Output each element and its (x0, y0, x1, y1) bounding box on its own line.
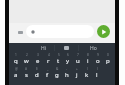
staticText: 3 (37, 53, 39, 57)
button[interactable]: Send (97, 25, 110, 38)
staticText: o (96, 57, 100, 65)
button[interactable]: 7 (73, 53, 83, 67)
staticText: j (76, 71, 78, 79)
button[interactable]: Voice typing (56, 43, 77, 53)
button[interactable]: ) (92, 67, 102, 81)
button[interactable]: 8 (83, 53, 93, 67)
staticText: y (66, 57, 70, 65)
button[interactable]: + (72, 67, 82, 81)
staticText: r (47, 57, 50, 65)
staticText: - (66, 67, 68, 71)
button[interactable] (26, 25, 94, 38)
button[interactable]: 1 (10, 53, 21, 67)
staticText: 6 (67, 53, 69, 57)
staticText: 7 (77, 53, 79, 57)
button[interactable]: ( (82, 67, 92, 81)
button[interactable]: 2 (21, 53, 32, 67)
staticText: q (14, 57, 18, 65)
button[interactable]: Attach media (14, 26, 27, 39)
staticText: s (25, 71, 28, 79)
staticText: f (46, 71, 49, 79)
staticText: _ (47, 67, 49, 71)
staticText: k (85, 71, 89, 79)
staticText: u (76, 57, 80, 65)
button[interactable]: Ho (81, 43, 105, 53)
button[interactable]: # (21, 67, 32, 81)
staticText: $ (36, 67, 38, 71)
button[interactable]: Hi (31, 43, 55, 53)
staticText: Ho (90, 45, 97, 52)
staticText: g (55, 71, 59, 79)
button[interactable]: - (62, 67, 72, 81)
staticText: @ (15, 67, 18, 71)
staticText: # (25, 67, 28, 71)
staticText: & (56, 67, 59, 71)
staticText: 9 (97, 53, 99, 57)
button[interactable]: _ (42, 67, 52, 81)
staticText: 5 (58, 53, 60, 57)
button[interactable]: 6 (63, 53, 73, 67)
staticText: w (24, 57, 29, 65)
staticText: + (76, 67, 78, 71)
staticText: 4 (48, 53, 50, 57)
button[interactable]: 5 (53, 53, 63, 67)
staticText: 1 (15, 53, 17, 57)
staticText: i (87, 57, 89, 65)
button[interactable]: 9 (93, 53, 103, 67)
staticText: 8 (87, 53, 89, 57)
button[interactable]: & (52, 67, 62, 81)
staticText: p (106, 57, 110, 65)
button[interactable]: $ (32, 67, 42, 81)
staticText: d (35, 71, 39, 79)
staticText: 2 (26, 53, 28, 57)
staticText: 0 (107, 53, 109, 57)
staticText: l (96, 71, 98, 79)
button[interactable]: 4 (43, 53, 53, 67)
staticText: t (57, 57, 60, 65)
staticText: h (65, 71, 69, 79)
staticText: a (14, 71, 18, 79)
staticText: e (36, 57, 40, 65)
staticText: Hi (41, 45, 46, 52)
button[interactable]: 0 (103, 53, 113, 67)
staticText: ( (87, 67, 88, 71)
staticText: ) (97, 67, 98, 71)
button[interactable]: @ (10, 67, 21, 81)
button[interactable]: 3 (32, 53, 43, 67)
